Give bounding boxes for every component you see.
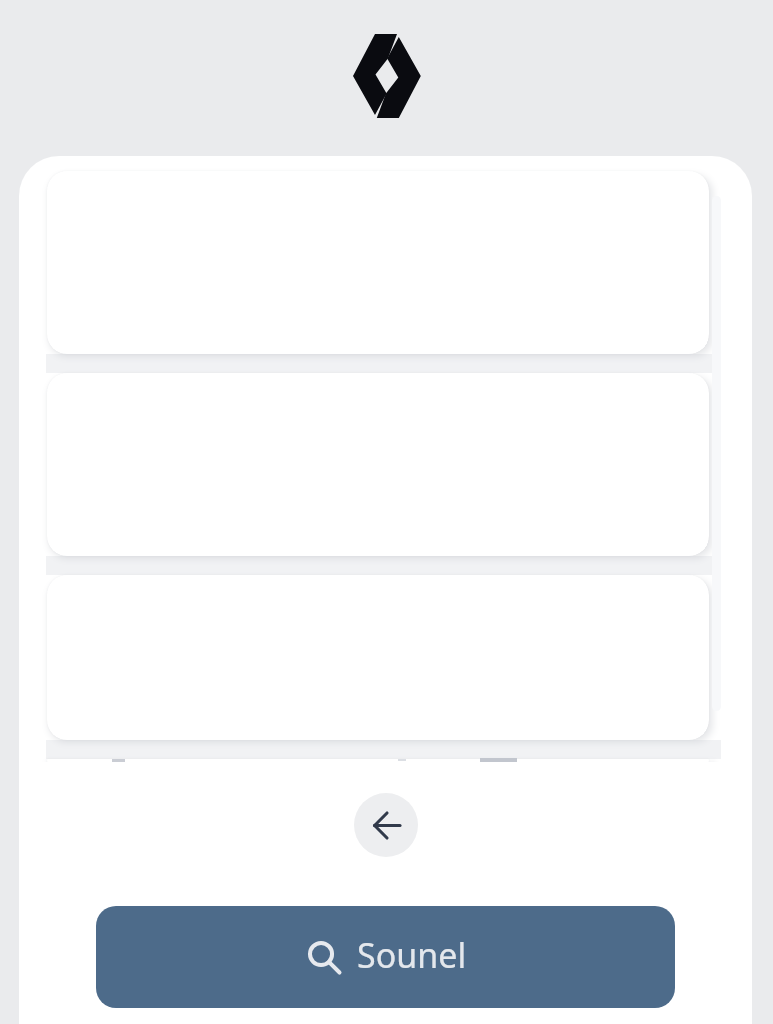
- staticText: Sounel: [357, 932, 467, 978]
- button[interactable]: Back: [354, 793, 418, 857]
- button[interactable]: Sounel: [96, 906, 675, 1008]
- button[interactable]: [47, 759, 709, 762]
